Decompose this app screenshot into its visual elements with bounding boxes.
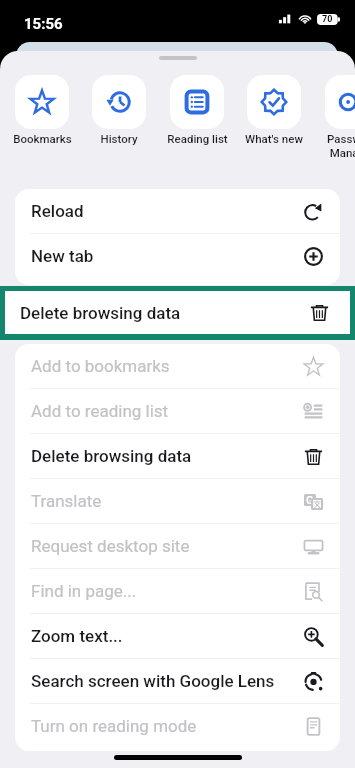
button[interactable]: Add to bookmarks: [15, 344, 340, 388]
button[interactable]: New tab: [15, 234, 340, 278]
button[interactable]: Reload: [15, 189, 340, 233]
button[interactable]: [15, 75, 69, 129]
staticText: Delete browsing data: [31, 446, 303, 466]
staticText: Add to bookmarks: [31, 356, 303, 376]
staticText: G: [306, 494, 314, 506]
staticText: Reading list: [167, 132, 228, 145]
button[interactable]: [325, 75, 355, 129]
staticText: 15:56: [24, 15, 63, 33]
button[interactable]: Request desktop site: [15, 524, 340, 568]
button[interactable]: Zoom text...: [15, 614, 340, 658]
button[interactable]: [170, 75, 224, 129]
button[interactable]: Search screen with Google Lens: [15, 659, 340, 703]
staticText: Zoom text...: [31, 626, 303, 646]
button[interactable]: Find in page...: [15, 569, 340, 613]
button[interactable]: Delete browsing data: [5, 291, 350, 334]
staticText: Request desktop site: [31, 536, 303, 556]
staticText: 70: [322, 14, 333, 25]
staticText: Turn on reading mode: [31, 716, 303, 736]
staticText: Password Manager: [327, 132, 355, 160]
button[interactable]: Turn on reading mode: [15, 704, 340, 748]
button[interactable]: Add to reading list: [15, 389, 340, 433]
button[interactable]: Delete browsing data: [15, 434, 340, 478]
staticText: Delete browsing data: [20, 303, 309, 323]
staticText: Find in page...: [31, 581, 303, 601]
button[interactable]: [247, 75, 301, 129]
staticText: Add to reading list: [31, 401, 303, 421]
staticText: Translate: [31, 491, 303, 511]
staticText: Bookmarks: [13, 132, 72, 145]
staticText: New tab: [31, 246, 303, 266]
staticText: History: [100, 132, 138, 145]
staticText: Search screen with Google Lens: [31, 671, 303, 691]
button[interactable]: Translate: [15, 479, 340, 523]
button[interactable]: [92, 75, 146, 129]
staticText: What's new: [245, 132, 303, 145]
staticText: Reload: [31, 201, 303, 221]
